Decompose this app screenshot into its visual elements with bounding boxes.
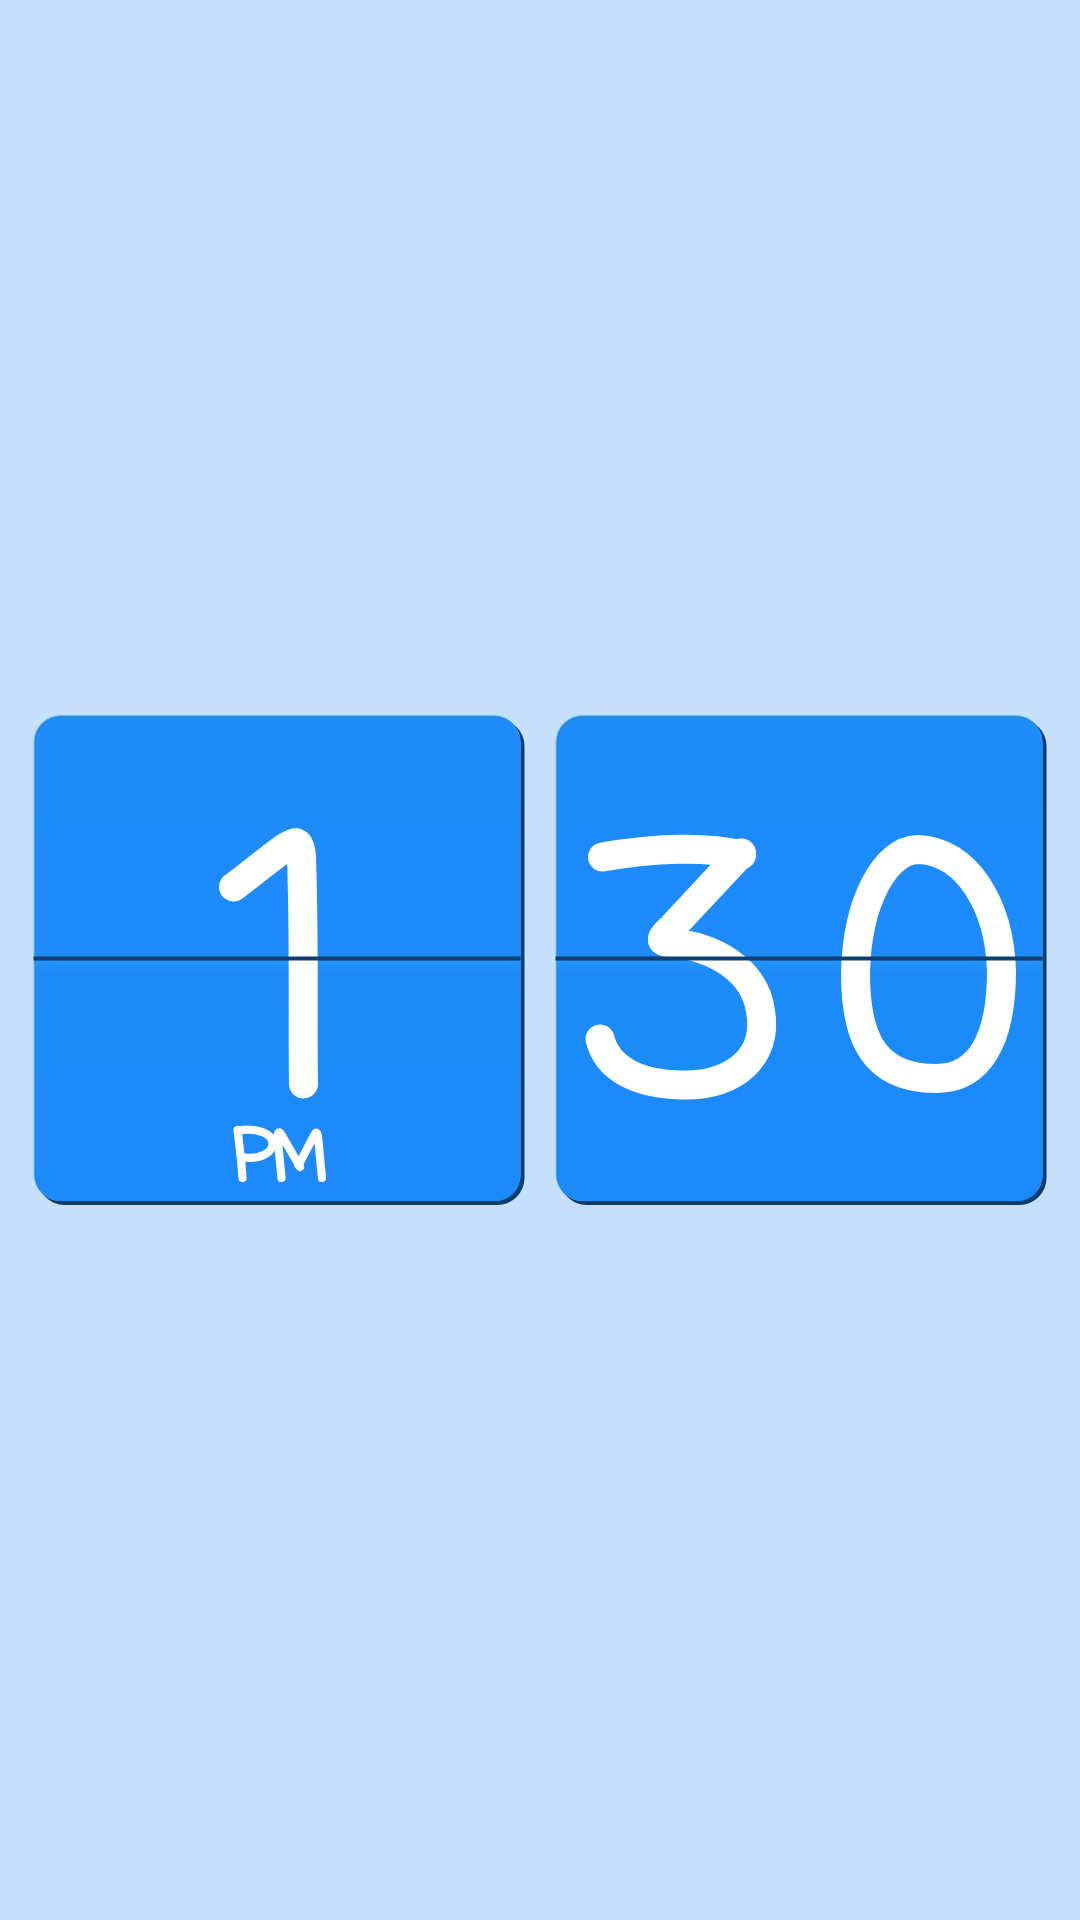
button[interactable]: Hour, 1 PM — [34, 715, 525, 1205]
button[interactable]: Minutes, 30 — [556, 715, 1047, 1205]
